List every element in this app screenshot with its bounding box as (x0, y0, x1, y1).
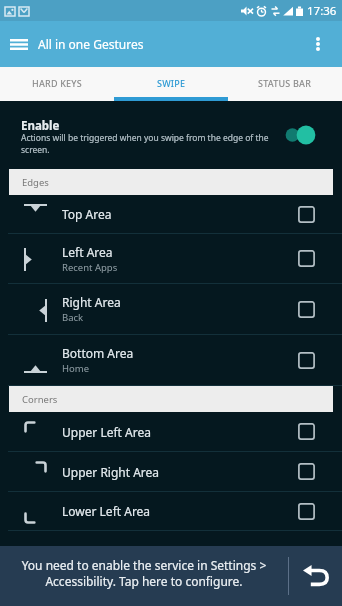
button[interactable]: Top Area (0, 195, 342, 233)
staticText: STATUS BAR (258, 77, 312, 89)
button[interactable]: Open navigation drawer (0, 21, 38, 67)
staticText: Actions will be triggered when you swipe… (21, 132, 276, 156)
button[interactable]: Lower Left Area (0, 492, 342, 530)
button[interactable]: Upper Right Area (0, 452, 342, 491)
staticText: Back (62, 311, 84, 324)
staticText: Home (62, 362, 90, 375)
button[interactable]: HARD KEYS (0, 67, 114, 101)
staticText: You need to enable the service in Settin… (19, 557, 269, 589)
button[interactable]: Right Area checkbox (284, 284, 342, 334)
button[interactable]: Enable toggle (284, 125, 316, 145)
staticText: Recent Apps (62, 261, 118, 274)
staticText: Lower Left Area (62, 503, 151, 519)
button[interactable]: Upper Right Area checkbox (284, 452, 342, 491)
button[interactable]: Upper Left Area checkbox (284, 412, 342, 451)
button[interactable]: SWIPE (114, 67, 228, 101)
button[interactable]: Upper Left Area (0, 412, 342, 451)
staticText: Enable (21, 118, 60, 134)
button[interactable]: You need to enable the service in Settin… (0, 546, 342, 606)
staticText: Upper Left Area (62, 424, 151, 440)
button[interactable]: Left Area (0, 234, 342, 283)
button[interactable]: Enable (0, 101, 342, 169)
button[interactable]: STATUS BAR (228, 67, 342, 101)
button[interactable]: Back (289, 546, 342, 606)
button[interactable]: Bottom Area (0, 335, 342, 385)
staticText: SWIPE (157, 77, 186, 89)
button[interactable]: Right Area (0, 284, 342, 334)
staticText: Bottom Area (62, 345, 134, 361)
staticText: Corners (22, 393, 58, 406)
button[interactable]: Top Area checkbox (284, 195, 342, 233)
staticText: Edges (22, 176, 49, 189)
staticText: Left Area (62, 244, 113, 260)
staticText: Right Area (62, 294, 121, 310)
staticText: Upper Right Area (62, 464, 160, 480)
staticText: All in one Gestures (38, 36, 144, 52)
staticText: Top Area (62, 206, 112, 222)
button[interactable]: Left Area checkbox (284, 234, 342, 283)
staticText: 17:36 (307, 3, 337, 19)
button[interactable]: Bottom Area checkbox (284, 335, 342, 385)
button[interactable]: More options (300, 21, 342, 67)
staticText: HARD KEYS (32, 77, 82, 89)
button[interactable]: Lower Left Area checkbox (284, 492, 342, 530)
